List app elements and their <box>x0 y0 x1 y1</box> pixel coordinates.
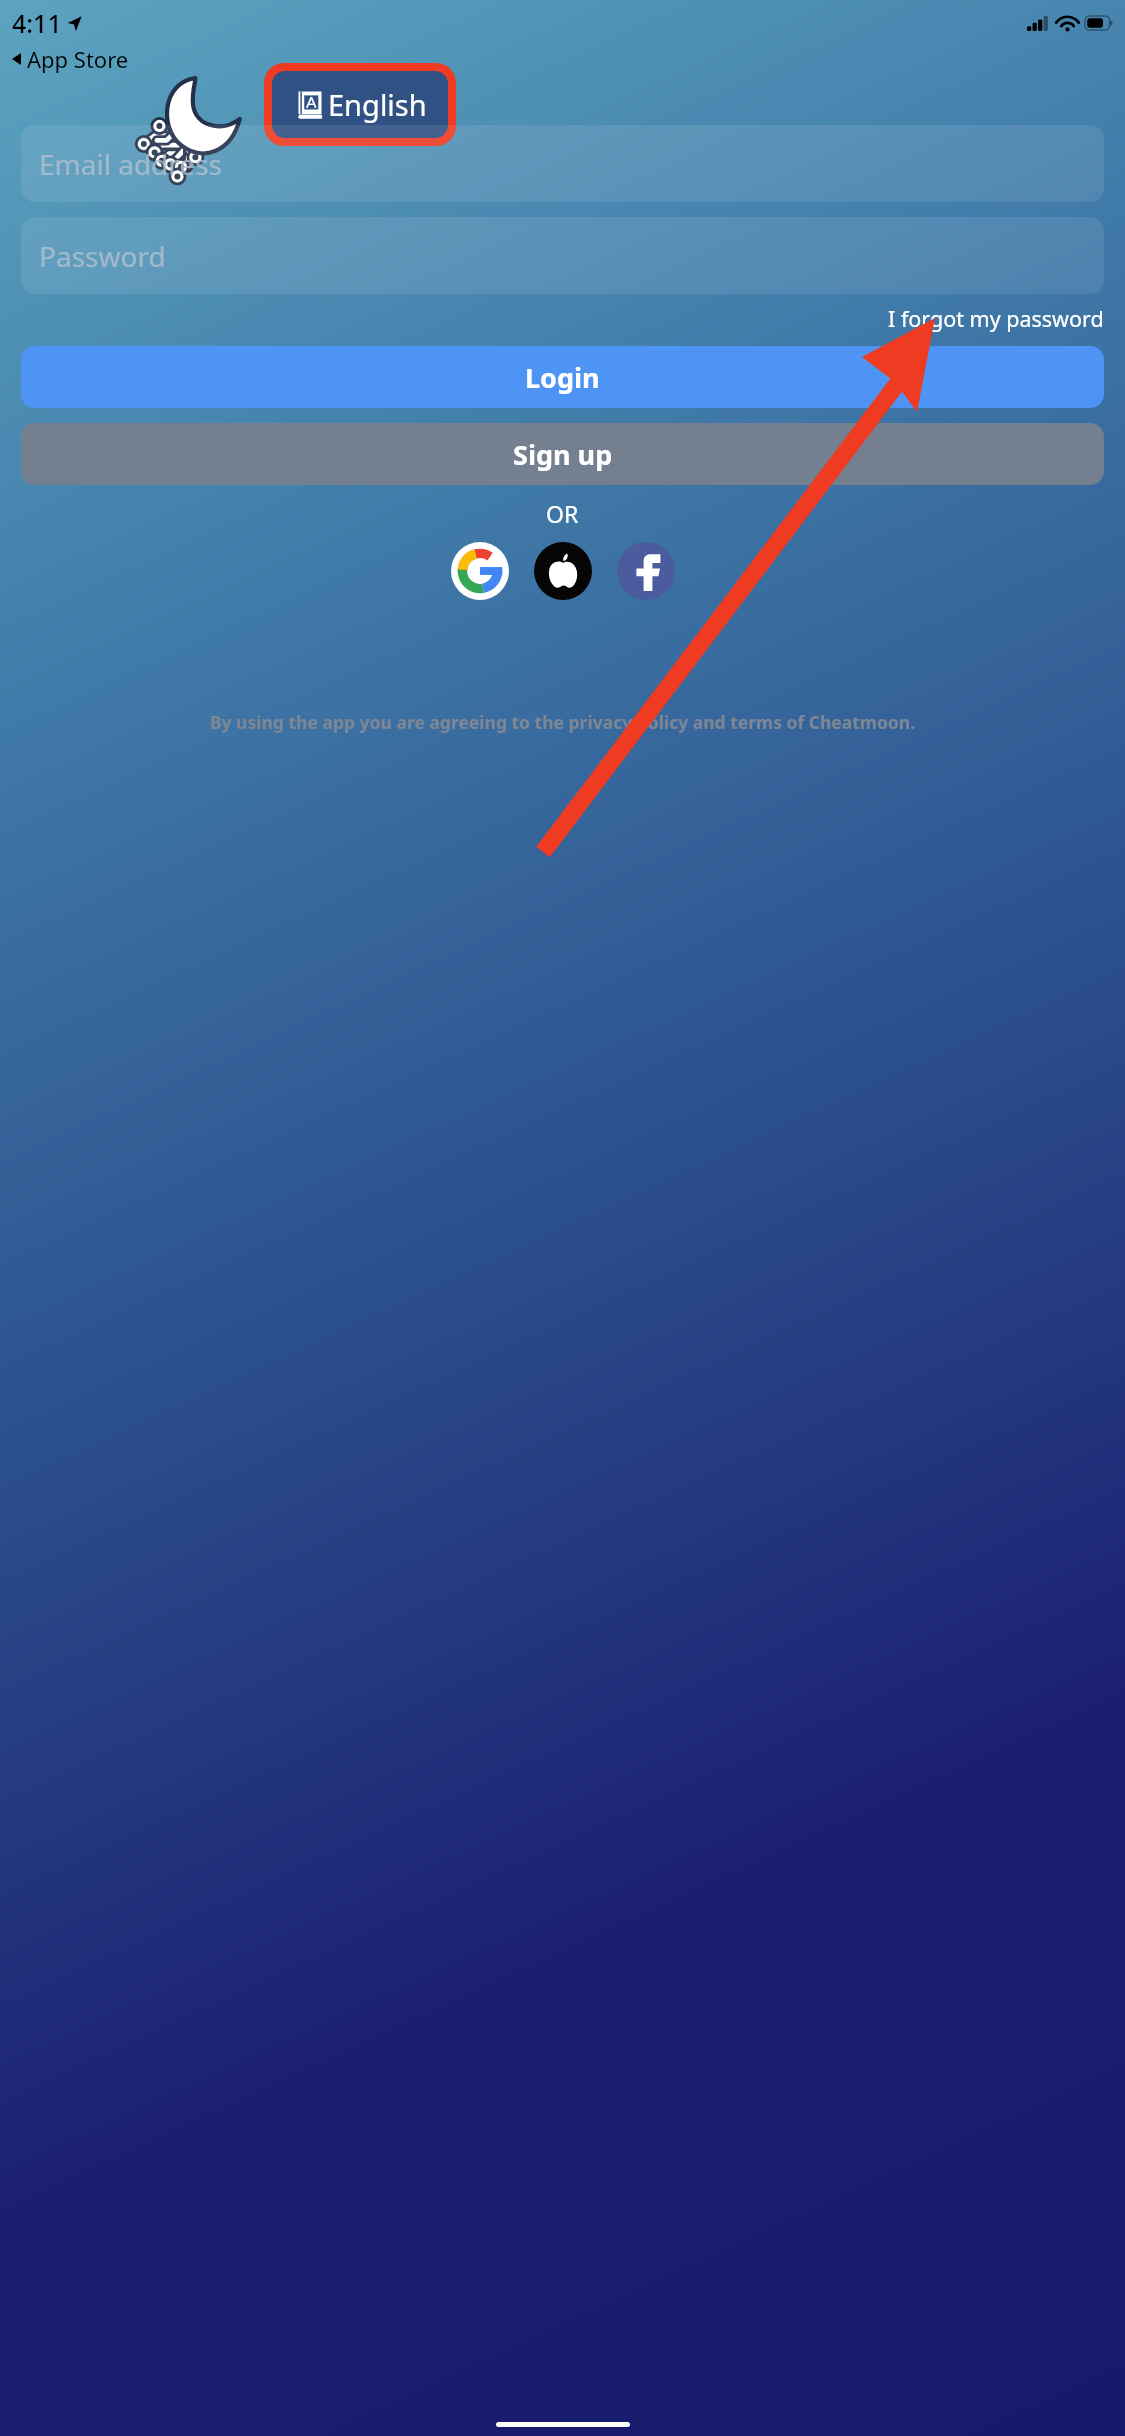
staticText: App Store <box>27 44 129 74</box>
staticText: Email address <box>39 145 222 183</box>
staticText: 4:11 <box>12 6 62 40</box>
button[interactable]: Sign in with Apple <box>534 542 592 600</box>
staticText: English <box>328 85 427 124</box>
button[interactable]: Sign in with Facebook <box>617 542 675 600</box>
staticText: OR <box>546 498 579 529</box>
staticText: Sign up <box>513 436 613 473</box>
staticText: I forgot my password <box>888 304 1104 333</box>
staticText: Login <box>525 359 600 396</box>
staticText: By using the app you are agreeing to the… <box>115 710 1010 734</box>
button[interactable]: Sign in with Google <box>451 542 509 600</box>
button[interactable]: Email address <box>21 125 1104 202</box>
staticText: Password <box>39 237 166 275</box>
button[interactable]: Sign up <box>21 423 1104 485</box>
button[interactable]: Password <box>21 217 1104 294</box>
button[interactable]: I forgot my password <box>21 304 1104 333</box>
button[interactable]: English <box>272 71 448 138</box>
button[interactable]: Login <box>21 346 1104 408</box>
